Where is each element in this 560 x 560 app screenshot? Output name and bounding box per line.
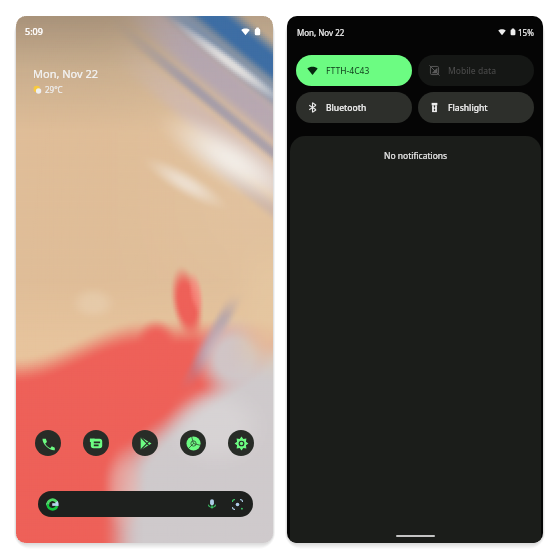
staticText: 29°C [45,84,63,95]
staticText: Mobile data [448,65,497,77]
staticText: Flashlight [448,102,488,114]
button[interactable]: Bluetooth [296,92,412,123]
staticText: Mon, Nov 22 [297,27,345,38]
staticText: 15% [518,27,534,38]
staticText: FTTH-4C43 [326,65,370,77]
button[interactable]: Chrome [180,430,206,456]
staticText: No notifications [384,150,448,162]
staticText: 5:09 [25,25,43,37]
button[interactable]: Flashlight [418,92,534,123]
staticText: Bluetooth [326,102,367,114]
button[interactable]: Phone [35,430,61,456]
button[interactable] [38,491,253,517]
button[interactable]: Play Store [132,430,158,456]
button[interactable]: FTTH-4C43 [296,55,412,86]
button[interactable]: Mobile data [418,55,534,86]
button[interactable]: Messages [83,430,109,456]
button[interactable]: Settings [228,430,254,456]
staticText: Mon, Nov 22 [33,66,99,81]
